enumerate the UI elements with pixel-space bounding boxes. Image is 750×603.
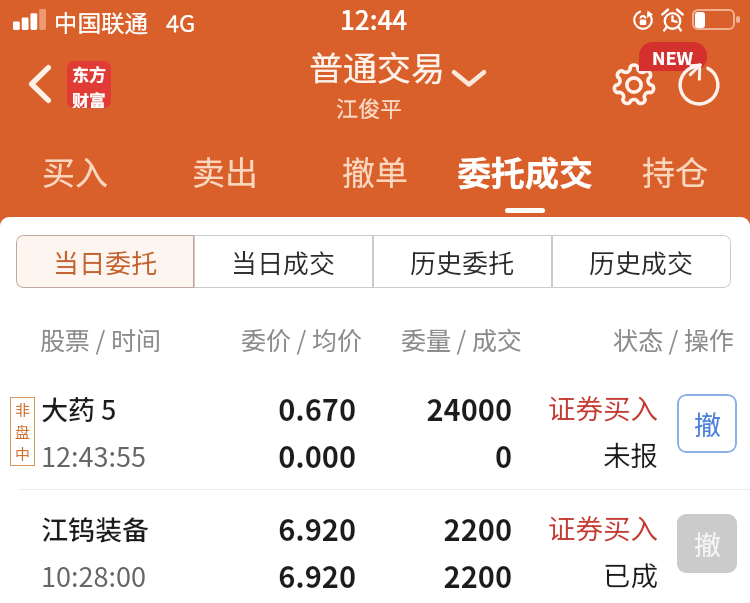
staticText: 2200: [282, 554, 512, 596]
staticText: 6.920: [126, 507, 356, 549]
staticText: 买入: [42, 147, 108, 195]
button[interactable]: 委托成交: [450, 142, 600, 219]
staticText: 撤单: [342, 147, 408, 195]
staticText: 4G: [166, 5, 196, 39]
button[interactable]: 非: [0, 368, 750, 486]
staticText: 证券买入: [428, 507, 658, 547]
button[interactable]: 江钨装备: [0, 488, 750, 603]
button[interactable]: 历史成交: [552, 235, 731, 288]
staticText: 12:43:55: [41, 436, 146, 475]
staticText: 10:28:00: [41, 556, 146, 595]
button[interactable]: 撤: [677, 514, 737, 573]
staticText: 历史委托: [410, 243, 515, 281]
button[interactable]: 历史委托: [373, 235, 552, 288]
staticText: 2200: [282, 507, 512, 549]
staticText: NEW: [652, 44, 694, 70]
button[interactable]: 撤单: [300, 142, 450, 219]
staticText: 江俊平: [336, 91, 403, 123]
button[interactable]: Refresh: [678, 64, 720, 106]
staticText: 江钨装备: [41, 509, 149, 548]
staticText: 股票 / 时间: [40, 321, 162, 357]
other: Back: [29, 65, 51, 103]
staticText: 持仓: [642, 147, 708, 195]
staticText: 已成: [428, 554, 658, 594]
staticText: 委量 / 成交: [292, 321, 522, 357]
button[interactable]: 买入: [0, 142, 150, 219]
button[interactable]: 普通交易: [309, 42, 486, 91]
staticText: 中: [15, 443, 31, 465]
button[interactable]: 当日成交: [194, 235, 373, 288]
staticText: 证券买入: [428, 387, 658, 427]
staticText: 非: [15, 399, 31, 421]
staticText: 普通交易: [309, 42, 445, 91]
staticText: 历史成交: [589, 243, 694, 281]
staticText: 当日成交: [231, 243, 336, 281]
staticText: 委价 / 均价: [132, 321, 362, 357]
staticText: 状态 / 操作: [504, 321, 734, 357]
staticText: 盘: [15, 421, 31, 443]
button[interactable]: 当日委托: [16, 235, 194, 288]
staticText: 0.670: [126, 387, 356, 429]
button[interactable]: Back: [29, 55, 127, 113]
staticText: 大药 5: [41, 389, 117, 428]
staticText: 中国联通: [54, 5, 148, 39]
staticText: 东方: [72, 61, 106, 86]
button[interactable]: 撤: [677, 394, 737, 453]
staticText: 撤: [694, 404, 721, 443]
staticText: 撤: [694, 524, 721, 563]
button[interactable]: Settings: [611, 62, 657, 108]
staticText: 未报: [428, 434, 658, 474]
staticText: 0: [282, 434, 512, 476]
staticText: 当日委托: [53, 243, 158, 281]
staticText: 12:44: [340, 0, 408, 38]
staticText: 24000: [282, 387, 512, 429]
button[interactable]: 卖出: [150, 142, 300, 219]
staticText: 财富: [72, 87, 106, 108]
staticText: 卖出: [192, 147, 258, 195]
staticText: 6.920: [126, 554, 356, 596]
staticText: 委托成交: [457, 147, 593, 196]
button[interactable]: 持仓: [600, 142, 750, 219]
staticText: 0.000: [126, 434, 356, 476]
